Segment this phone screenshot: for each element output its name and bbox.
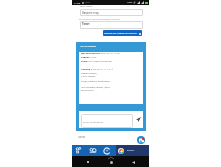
button[interactable]: Recent: [102, 146, 111, 155]
staticText: Заявка: 1625: [81, 55, 97, 58]
button[interactable]: Текст: [80, 21, 143, 29]
button[interactable]: Recents: [84, 158, 92, 166]
button[interactable]: Stickers: [88, 146, 98, 156]
staticText: Введите тему: [82, 11, 99, 15]
staticText: Тема заявки: [80, 5, 93, 8]
button[interactable]: Введите тему: [80, 9, 143, 16]
staticText: Текст: [82, 22, 90, 26]
button[interactable]: Send: [135, 116, 142, 123]
staticText: 11:06: [74, 1, 81, 4]
staticText: Иванов 2025-03-31 11:10 ✔: [81, 67, 114, 70]
staticText: 100%: [127, 1, 133, 4]
button[interactable]: Assistant: [118, 148, 124, 154]
staticText: Когда решить проблему?: [81, 79, 111, 82]
staticText: Здравствуйте,: [81, 71, 98, 74]
staticText: выполнить.: [81, 88, 95, 91]
staticText: Тема: Нет электроэнергии: [81, 59, 112, 62]
staticText: ОТПРАВИТЬ ЗАЯВКУ НА ОПЛАТУ: [104, 32, 137, 35]
button[interactable]: Back: [129, 158, 137, 166]
button[interactable]: Home: [107, 158, 115, 166]
staticText: вопрос: [127, 149, 135, 152]
button[interactable]: Messages: [137, 136, 145, 144]
staticText: У вас заявка: [81, 74, 96, 77]
staticText: Ваше сообщение: [83, 120, 104, 123]
button[interactable]: ОТПРАВИТЬ ЗАЯВКУ НА ОПЛАТУ: [103, 30, 142, 36]
staticText: Кто получил доступ по вашему аккаунту: [79, 18, 121, 21]
staticText: чаты: [78, 135, 86, 139]
button[interactable]: Handwriting: [74, 146, 83, 155]
button[interactable]: Ваше сообщение: [81, 114, 133, 128]
staticText: Диспетчерская 2025-03-31 11:06: [81, 51, 120, 54]
staticText: Чат по заявке: [80, 44, 96, 47]
staticText: Мы примем заявку, день: [81, 85, 111, 88]
